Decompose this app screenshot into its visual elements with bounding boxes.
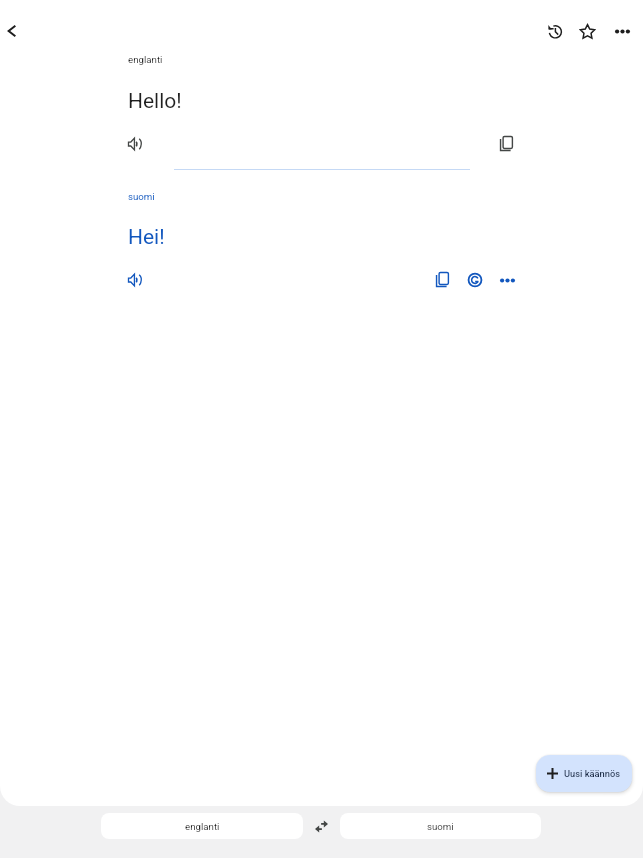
button[interactable]: Listen to translation: [113, 258, 157, 302]
staticText: Hello!: [128, 89, 182, 114]
staticText: suomi: [427, 821, 454, 832]
staticText: englanti: [185, 821, 220, 832]
staticText: suomi: [128, 191, 155, 202]
button[interactable]: Search with Google: [453, 258, 497, 302]
staticText: englanti: [128, 54, 163, 65]
button[interactable]: More translation options: [485, 258, 529, 302]
button[interactable]: More options: [600, 9, 643, 53]
button[interactable]: Copy text: [483, 121, 527, 165]
button[interactable]: Copy translation: [419, 257, 463, 301]
button[interactable]: Back: [0, 9, 34, 53]
staticText: Hei!: [128, 225, 165, 250]
button[interactable]: Listen: [113, 122, 157, 166]
button[interactable]: Save translation: [565, 9, 609, 53]
button[interactable]: suomi: [340, 813, 541, 839]
button[interactable]: History: [532, 9, 576, 53]
button[interactable]: Uusi käännös: [536, 755, 632, 792]
staticText: Uusi käännös: [564, 768, 620, 779]
button[interactable]: englanti: [101, 813, 303, 839]
button[interactable]: Swap languages: [303, 813, 340, 839]
